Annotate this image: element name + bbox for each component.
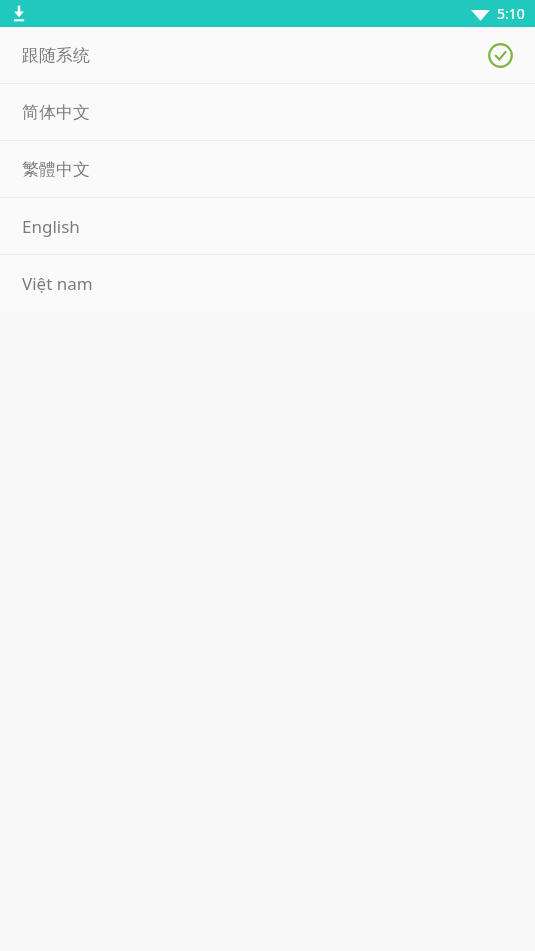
other: Download [11,5,27,22]
button[interactable]: English [0,198,535,254]
button[interactable]: 简体中文 [0,84,535,140]
button[interactable]: 跟随系统 [0,27,535,83]
staticText: English [22,215,80,238]
staticText: 5:10 [497,4,525,23]
button[interactable]: 繁體中文 [0,141,535,197]
staticText: 简体中文 [22,102,90,123]
other: Selected [488,43,513,68]
staticText: Việt nam [22,272,93,295]
staticText: 跟随系统 [22,45,90,66]
button[interactable]: Việt nam [0,255,535,311]
other: Wi-Fi [471,7,490,21]
staticText: 繁體中文 [22,159,90,180]
